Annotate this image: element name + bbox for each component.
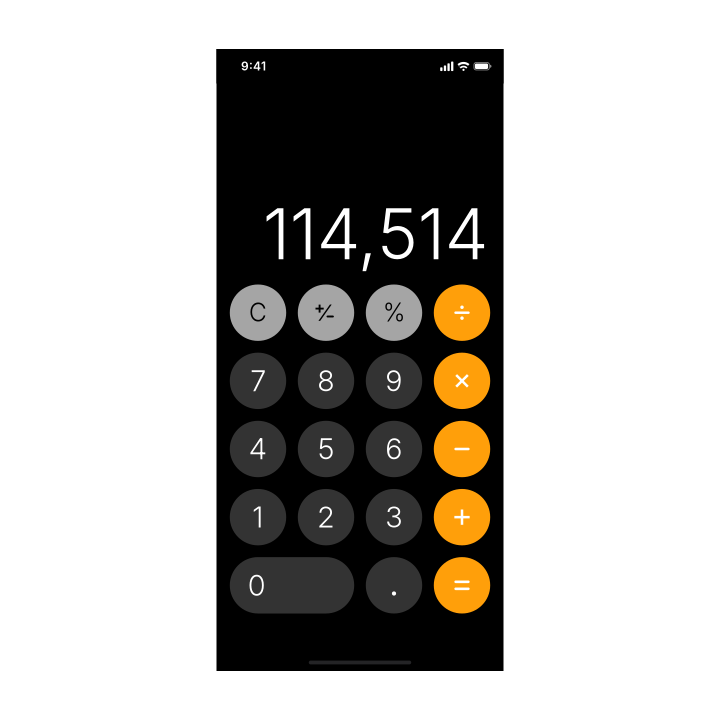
button[interactable]: 8 <box>298 353 354 409</box>
staticText: 7 <box>250 364 265 398</box>
staticText: 114,514 <box>263 192 489 276</box>
button[interactable]: Plus <box>434 489 490 545</box>
staticText: 9:41 <box>241 59 266 73</box>
staticText: % <box>383 298 405 327</box>
staticText: 2 <box>317 500 334 534</box>
staticText: 8 <box>317 364 334 398</box>
staticText: 5 <box>318 432 334 466</box>
staticText: 0 <box>248 568 265 603</box>
button[interactable]: 2 <box>298 489 354 545</box>
button[interactable]: 9 <box>366 353 422 409</box>
button[interactable]: Equals <box>434 557 490 613</box>
button[interactable]: Minus <box>434 421 490 477</box>
staticText: 6 <box>385 432 402 466</box>
button[interactable]: Percent <box>366 284 422 341</box>
staticText: 1 <box>252 500 263 534</box>
button[interactable]: 1 <box>230 489 286 545</box>
button[interactable]: Zero <box>230 557 354 613</box>
button[interactable]: 6 <box>366 421 422 477</box>
staticText: 9 <box>385 364 402 398</box>
button[interactable]: Clear <box>230 284 286 341</box>
button[interactable]: Decimal point <box>366 557 422 613</box>
button[interactable]: Divide <box>434 284 490 341</box>
button[interactable]: Multiply <box>434 353 490 409</box>
staticText: C <box>249 298 267 327</box>
button[interactable]: 5 <box>298 421 354 477</box>
button[interactable]: Toggle sign <box>298 284 354 341</box>
button[interactable]: 4 <box>230 421 286 477</box>
staticText: 4 <box>249 432 267 466</box>
button[interactable]: 7 <box>230 353 286 409</box>
staticText: 3 <box>385 500 402 534</box>
button[interactable]: 3 <box>366 489 422 545</box>
